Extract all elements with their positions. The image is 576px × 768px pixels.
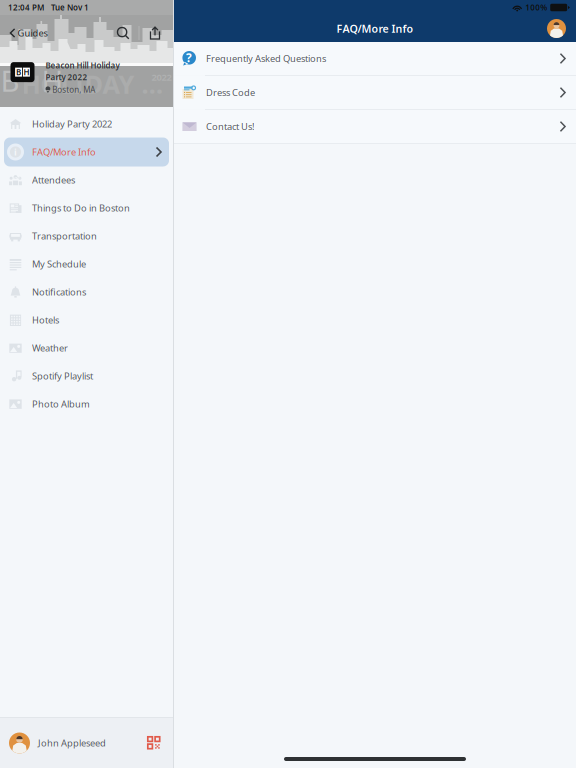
button[interactable]: John Appleseed	[0, 717, 173, 768]
staticText: Contact Us!	[206, 120, 255, 133]
staticText: Attendees	[32, 174, 75, 186]
staticText: Photo Album	[32, 398, 90, 410]
staticText: Things to Do in Boston	[32, 202, 130, 214]
staticText: HOLIDAY PARTY	[21, 67, 173, 101]
button[interactable]: Transportation	[0, 222, 173, 250]
staticText: Transportation	[32, 230, 97, 242]
button[interactable]: Hotels	[0, 306, 173, 334]
staticText: 2022	[151, 71, 171, 83]
staticText: B	[0, 61, 19, 100]
staticText: ?	[186, 49, 192, 65]
staticText: Party 2022	[45, 72, 87, 82]
staticText: John Appleseed	[38, 737, 106, 749]
staticText: Tue Nov 1	[51, 2, 89, 13]
staticText: H	[41, 61, 63, 100]
staticText: FAQ/More Info	[32, 146, 96, 158]
button[interactable]: Holiday Party 2022	[0, 110, 173, 138]
button[interactable]: Attendees	[0, 166, 173, 194]
staticText: Weather	[32, 342, 68, 354]
button[interactable]: Guides	[0, 27, 53, 39]
button[interactable]: Account	[547, 19, 576, 38]
staticText: My Schedule	[32, 258, 86, 270]
button[interactable]: Photo Album	[0, 390, 173, 418]
staticText: Spotify Playlist	[32, 370, 93, 382]
button[interactable]: i	[0, 138, 173, 166]
button[interactable]: Dress Code	[174, 76, 576, 110]
button[interactable]: Contact Us!	[174, 110, 576, 144]
staticText: 100%	[525, 2, 547, 13]
staticText: Guides	[17, 27, 47, 39]
staticText: FAQ/More Info	[336, 21, 413, 36]
staticText: Frequently Asked Questions	[206, 52, 326, 65]
button[interactable]: Share	[139, 26, 173, 40]
button[interactable]: Things to Do in Boston	[0, 194, 173, 222]
staticText: Boston, MA	[52, 84, 95, 95]
button[interactable]: My Schedule	[0, 250, 173, 278]
staticText: 12:04 PM	[8, 2, 44, 13]
staticText: i	[14, 146, 17, 158]
staticText: Notifications	[32, 286, 86, 298]
staticText: Holiday Party 2022	[32, 118, 112, 130]
button[interactable]: Weather	[0, 334, 173, 362]
staticText: B	[16, 67, 21, 77]
button[interactable]: Search	[112, 26, 133, 39]
staticText: H	[23, 67, 29, 77]
button[interactable]: Spotify Playlist	[0, 362, 173, 390]
staticText: Beacon Hill Holiday	[45, 60, 119, 71]
button[interactable]: Notifications	[0, 278, 173, 306]
staticText: Dress Code	[206, 86, 255, 99]
button[interactable]: ?	[174, 42, 576, 76]
staticText: Hotels	[32, 314, 59, 326]
